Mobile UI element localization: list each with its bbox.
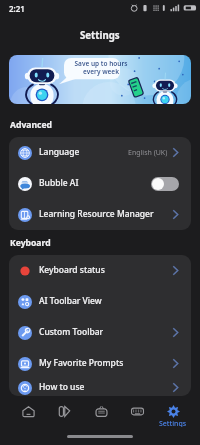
staticText: Learning Resource Manager — [39, 208, 154, 220]
staticText: My Favorite Prompts — [39, 357, 124, 369]
button[interactable]: Write — [46, 397, 82, 427]
staticText: Bubble AI — [39, 177, 79, 189]
button[interactable]: Language — [9, 137, 191, 168]
button[interactable]: AI Toolbar View — [9, 286, 191, 317]
staticText: Custom Toolbar — [39, 326, 104, 338]
staticText: AI Toolbar View — [39, 295, 102, 307]
button[interactable]: How to use — [9, 379, 191, 396]
staticText: How to use — [39, 381, 85, 393]
staticText: Keyboard status — [39, 264, 105, 276]
button[interactable]: Discover — [83, 397, 119, 427]
staticText: Advanced — [10, 119, 53, 131]
staticText: Settings — [159, 419, 187, 427]
staticText: English (UK) — [128, 148, 168, 158]
button[interactable]: Keyboard — [119, 397, 155, 427]
button[interactable]: Bubble AI — [9, 168, 191, 199]
button[interactable]: Custom Toolbar — [9, 317, 191, 348]
button[interactable]: Learning Resource Manager — [9, 199, 191, 230]
button[interactable]: Toggle Bubble AI — [151, 177, 179, 191]
button[interactable]: Home — [10, 397, 46, 427]
staticText: Settings — [80, 29, 120, 42]
staticText: Save up to hours every week — [73, 59, 129, 76]
staticText: 2:21 — [9, 3, 25, 14]
button[interactable]: My Favorite Prompts — [9, 348, 191, 379]
staticText: Keyboard — [10, 237, 51, 249]
button[interactable]: Keyboard status — [9, 255, 191, 286]
button[interactable]: Save up to hours every week — [9, 55, 191, 104]
button[interactable]: Settings — [155, 397, 191, 427]
staticText: Language — [39, 146, 80, 158]
